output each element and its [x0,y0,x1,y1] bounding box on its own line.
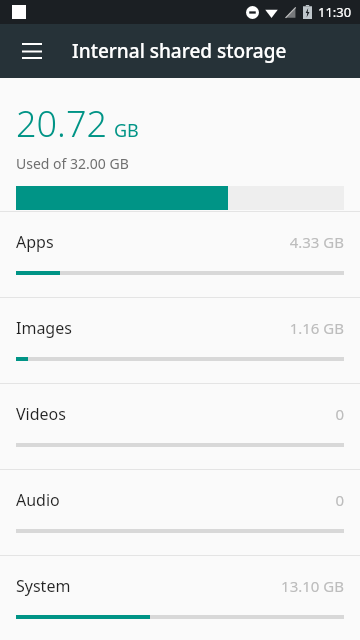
staticText: 0 [335,490,344,510]
staticText: 11:30 [318,3,352,21]
button[interactable]: Audio [0,470,360,555]
staticText: 13.10 GB [281,576,344,596]
staticText: 20.72 [16,99,108,148]
staticText: Images [16,317,72,339]
staticText: Used of 32.00 GB [16,154,129,173]
staticText: Internal shared storage [72,38,287,64]
button[interactable]: Videos [0,384,360,469]
button[interactable]: 20.72 [0,78,360,211]
staticText: GB [114,118,139,143]
staticText: Videos [16,403,66,425]
staticText: 4.33 GB [289,232,344,252]
staticText: 0 [335,404,344,424]
staticText: Apps [16,231,54,253]
staticText: System [16,575,71,597]
button[interactable]: Open navigation drawer [10,29,54,73]
button[interactable]: Apps [0,212,360,297]
staticText: Audio [16,489,60,511]
staticText: 1.16 GB [289,318,344,338]
button[interactable]: Images [0,298,360,383]
button[interactable]: System [0,556,360,640]
